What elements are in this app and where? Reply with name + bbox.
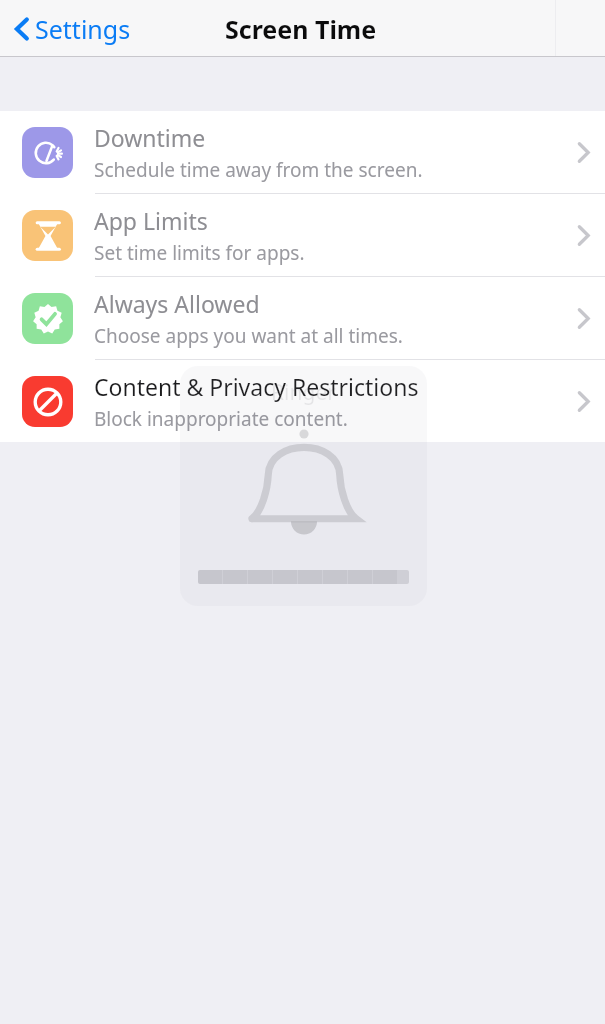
button[interactable]: Downtime	[0, 111, 605, 194]
staticText: Downtime	[94, 122, 206, 153]
staticText: Ringer	[271, 378, 336, 407]
button[interactable]: Settings	[10, 8, 135, 50]
staticText: Content & Privacy Restrictions	[94, 371, 419, 402]
staticText: Set time limits for apps.	[94, 240, 305, 266]
staticText: Schedule time away from the screen.	[94, 157, 423, 183]
staticText: Screen Time	[225, 12, 377, 46]
staticText: Block inappropriate content.	[94, 406, 348, 432]
button[interactable]: Always Allowed	[0, 277, 605, 360]
staticText: Choose apps you want at all times.	[94, 323, 403, 349]
staticText: Always Allowed	[94, 288, 260, 319]
button[interactable]: Content & Privacy Restrictions	[0, 360, 605, 442]
staticText: Settings	[35, 12, 131, 46]
staticText: App Limits	[94, 205, 208, 236]
button[interactable]: App Limits	[0, 194, 605, 277]
